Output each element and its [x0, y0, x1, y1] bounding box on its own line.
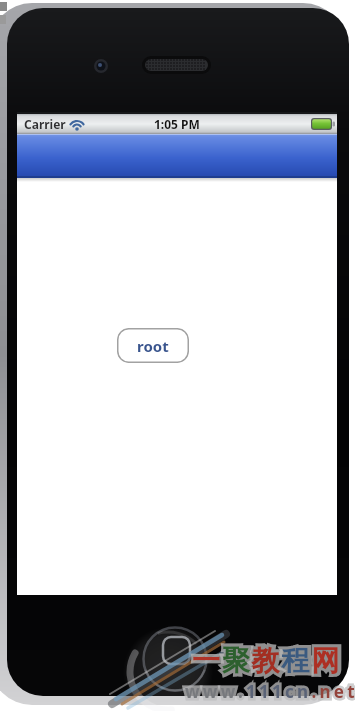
staticText: www.111cn.net	[185, 680, 355, 703]
staticText: 一聚教程网	[192, 643, 341, 678]
staticText: Carrier	[24, 116, 66, 132]
staticText: root	[137, 336, 169, 356]
button[interactable]: root	[117, 328, 189, 363]
button[interactable]	[17, 134, 337, 178]
staticText: 1:05 PM	[154, 116, 200, 132]
staticText: 一聚教程网	[192, 643, 342, 678]
staticText: www.111cn.net	[185, 680, 355, 703]
